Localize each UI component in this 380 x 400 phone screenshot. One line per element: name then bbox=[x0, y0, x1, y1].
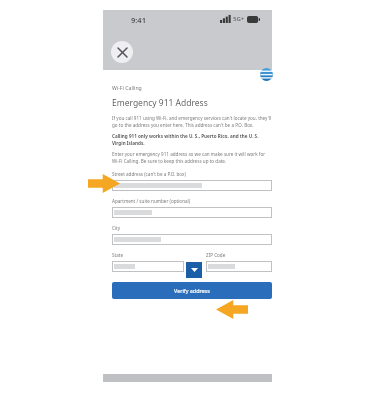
staticText: Apartment / suite number (optional) bbox=[112, 198, 191, 204]
button[interactable]: Select state bbox=[186, 262, 202, 278]
button[interactable] bbox=[112, 180, 272, 191]
button[interactable]: Verify address bbox=[112, 282, 272, 299]
staticText: Enter your emergency 911 address so we c… bbox=[112, 151, 272, 164]
staticText: 9:41 bbox=[131, 15, 146, 25]
button[interactable]: Close bbox=[111, 41, 133, 63]
button[interactable] bbox=[206, 261, 272, 272]
staticText: 5G+ bbox=[233, 15, 245, 23]
button[interactable] bbox=[112, 207, 272, 218]
button[interactable] bbox=[112, 234, 272, 245]
staticText: Wi-Fi Calling bbox=[112, 84, 142, 91]
staticText: If you call 911 using Wi-Fi, and emergen… bbox=[112, 115, 272, 128]
staticText: Street address (can't be a P.O. box) bbox=[112, 171, 186, 177]
staticText: City bbox=[112, 225, 121, 231]
staticText: Verify address bbox=[174, 287, 210, 294]
staticText: Emergency 911 Address bbox=[112, 97, 208, 109]
staticText: ZIP Code bbox=[206, 252, 226, 258]
button[interactable]: AT&T logo bbox=[260, 68, 273, 81]
staticText: State bbox=[112, 252, 124, 258]
button[interactable] bbox=[112, 261, 184, 272]
staticText: Calling 911 only works within the U. S.,… bbox=[112, 133, 272, 146]
